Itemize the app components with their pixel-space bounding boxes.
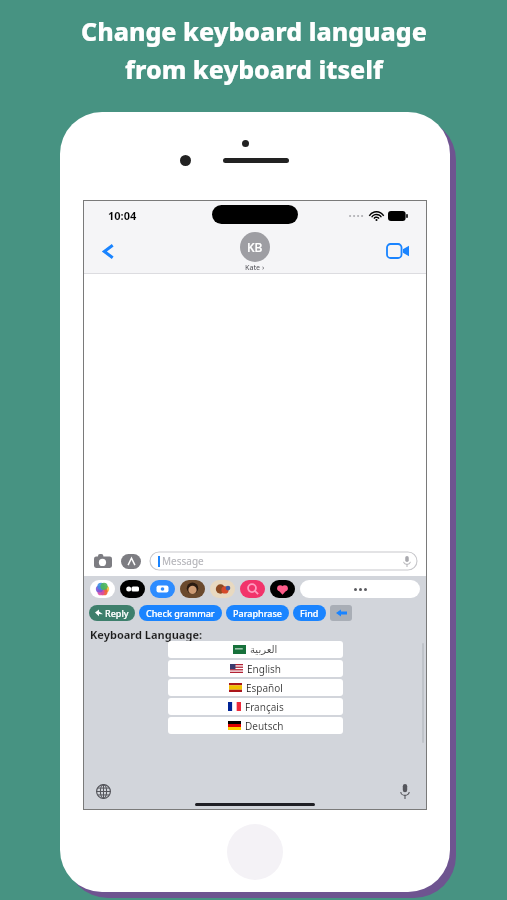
button[interactable]: العربية: [168, 641, 343, 658]
staticText: Paraphrase: [233, 607, 282, 619]
staticText: KB: [247, 239, 263, 255]
button[interactable]: Check grammar: [146, 605, 215, 621]
button[interactable]: Español: [168, 679, 343, 696]
button[interactable]: English: [168, 660, 343, 677]
button[interactable]: Reply: [95, 605, 129, 621]
staticText: Check grammar: [146, 607, 215, 619]
staticText: Change keyboard language: [81, 14, 427, 48]
staticText: Find: [300, 607, 319, 619]
staticText: Español: [246, 681, 283, 695]
button[interactable]: App: [90, 580, 115, 598]
button[interactable]: More apps: [300, 580, 420, 598]
staticText: Deutsch: [245, 719, 284, 733]
button[interactable]: App: [150, 580, 175, 598]
button[interactable]: Camera: [92, 550, 114, 572]
button[interactable]: App: [210, 580, 235, 598]
button[interactable]: Message: [150, 552, 417, 570]
staticText: العربية: [250, 644, 278, 656]
button[interactable]: App: [270, 580, 295, 598]
button[interactable]: Find: [300, 605, 319, 621]
button[interactable]: Back: [330, 605, 352, 621]
button[interactable]: Dictation: [394, 780, 416, 802]
staticText: Kate ›: [245, 263, 265, 273]
staticText: English: [247, 662, 282, 676]
button[interactable]: KB: [240, 232, 270, 273]
button[interactable]: App: [120, 580, 145, 598]
button[interactable]: Back: [92, 235, 124, 267]
button[interactable]: Switch keyboard: [92, 780, 114, 802]
staticText: Message: [162, 554, 204, 568]
staticText: 10:04: [108, 208, 137, 223]
staticText: Reply: [105, 607, 129, 619]
button[interactable]: App: [240, 580, 265, 598]
staticText: Keyboard Language:: [90, 627, 203, 642]
button[interactable]: Apps: [120, 550, 142, 572]
staticText: Français: [245, 700, 284, 714]
staticText: from keyboard itself: [125, 52, 383, 86]
button[interactable]: App: [180, 580, 205, 598]
button[interactable]: Home: [227, 824, 283, 880]
button[interactable]: Paraphrase: [233, 605, 282, 621]
button[interactable]: FaceTime video: [382, 235, 414, 267]
button[interactable]: Français: [168, 698, 343, 715]
button[interactable]: Deutsch: [168, 717, 343, 734]
